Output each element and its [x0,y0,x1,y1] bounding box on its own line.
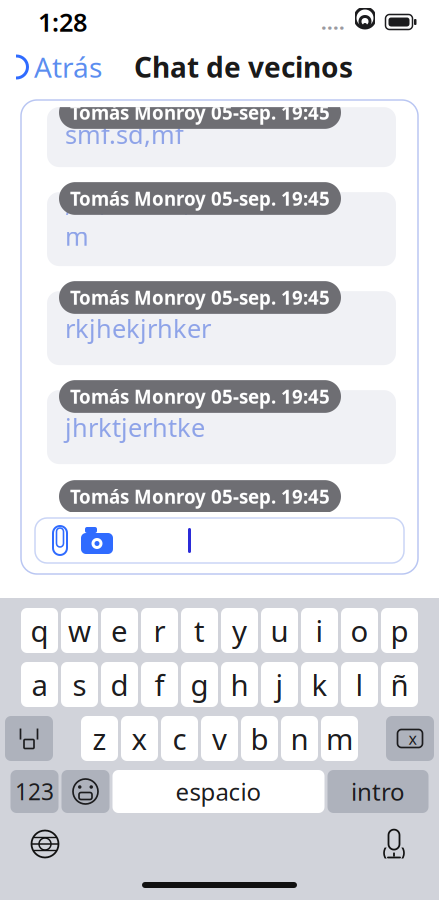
staticText: n [290,719,308,758]
button[interactable]: a [21,662,58,707]
staticText: smf.sd,mf [65,117,184,151]
staticText: r [153,611,165,650]
button[interactable]: y [221,608,258,653]
staticText: 123 [15,776,54,806]
staticText: rkjhekjrhker [65,311,211,345]
staticText: jhrktjerhtke [65,410,205,444]
staticText: i [315,611,323,650]
button[interactable]: n [281,716,318,761]
button[interactable]: ñ [381,662,418,707]
staticText: l [355,665,363,704]
staticText: g [190,665,208,704]
button[interactable]: g [181,662,218,707]
button[interactable]: w [61,608,98,653]
staticText: z [92,719,106,758]
staticText: q [30,611,48,650]
staticText: h [230,665,248,704]
button[interactable]: Cambiar teclado [24,823,66,865]
staticText: p [390,611,408,650]
button[interactable]: z [81,716,118,761]
staticText: 1:28 [38,5,87,39]
staticText: a [31,665,47,704]
button[interactable]: r [141,608,178,653]
staticText: c [172,719,186,758]
button[interactable]: c [161,716,198,761]
button[interactable]: espacio [112,770,324,813]
button[interactable]: intro [327,770,428,813]
button[interactable]: Cámara [77,527,117,554]
button[interactable]: Mayúsculas [5,716,53,761]
button[interactable]: d [101,662,138,707]
staticText: d [110,665,128,704]
staticText: w [68,611,91,650]
button[interactable]: s [61,662,98,707]
staticText: o [350,611,368,650]
staticText: m [326,719,353,758]
button[interactable]: h [221,662,258,707]
staticText: s [72,665,86,704]
staticText: ñ [390,665,408,704]
button[interactable]: p [381,608,418,653]
staticText: f [154,665,164,704]
staticText: Tomás Monroy 05-sep. 19:45 [70,186,330,211]
button[interactable]: Atrás [8,42,110,92]
button[interactable]: 123 [10,770,58,813]
staticText: Tomás Monroy 05-sep. 19:45 [70,384,330,409]
button[interactable]: i [301,608,338,653]
staticText: x [408,728,416,749]
button[interactable]: u [261,608,298,653]
button[interactable]: e [101,608,138,653]
staticText: y [232,611,247,650]
button[interactable]: Dictado [373,823,415,865]
button[interactable]: m [321,716,358,761]
button[interactable]: o [341,608,378,653]
staticText: b [250,719,268,758]
staticText: espacio [175,776,261,807]
staticText: .... [321,9,345,35]
button[interactable]: k [301,662,338,707]
staticText: k [311,665,327,704]
button[interactable]: x [121,716,158,761]
button[interactable]: b [241,716,278,761]
staticText: e [111,611,128,650]
staticText: Atrás [34,48,102,86]
button[interactable]: Adjuntar archivo [43,525,77,555]
staticText: t [194,611,205,650]
button[interactable]: j [261,662,298,707]
button[interactable]: f [141,662,178,707]
button[interactable]: l [341,662,378,707]
staticText: Chat de vecinos [134,48,353,86]
button[interactable]: v [201,716,238,761]
staticText: intro [351,776,405,807]
staticText: Tomás Monroy 05-sep. 19:45 [70,484,330,509]
button[interactable]: Emoji [61,770,109,813]
staticText: v [212,719,227,758]
button[interactable]: q [21,608,58,653]
staticText: ,sd,fmnsd,fm [65,185,208,253]
staticText: x [131,719,147,758]
button[interactable]: t [181,608,218,653]
button[interactable]: Borrar [386,716,434,761]
staticText: j [275,665,283,704]
staticText: Tomás Monroy 05-sep. 19:45 [70,285,330,310]
staticText: u [270,611,288,650]
staticText: Tomás Monroy 05-sep. 19:45 [70,100,330,125]
